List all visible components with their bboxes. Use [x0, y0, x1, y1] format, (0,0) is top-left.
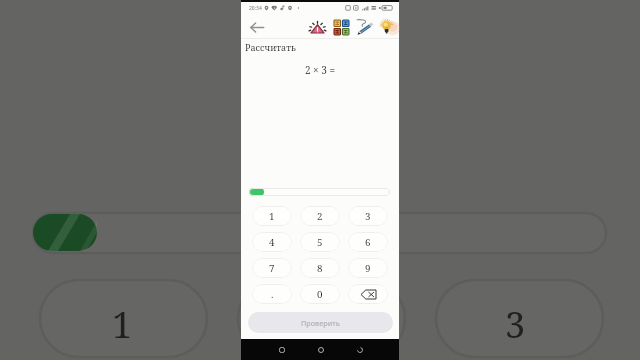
- button[interactable]: Backspace: [348, 284, 388, 304]
- button[interactable]: 8: [300, 258, 340, 278]
- button[interactable]: 7: [252, 258, 292, 278]
- staticText: 7: [269, 262, 275, 275]
- button[interactable]: Recents: [274, 342, 290, 358]
- button[interactable]: 1: [252, 206, 292, 226]
- button[interactable]: 4: [252, 232, 292, 252]
- button[interactable]: 3: [348, 206, 388, 226]
- staticText: 0: [317, 288, 323, 301]
- staticText: 9: [365, 262, 371, 275]
- staticText: 20:34: [249, 5, 262, 12]
- button[interactable]: 9: [348, 258, 388, 278]
- button[interactable]: 5: [300, 232, 340, 252]
- staticText: 4: [269, 236, 275, 249]
- button[interactable]: Warning: [307, 17, 327, 37]
- staticText: Проверить: [301, 318, 340, 328]
- staticText: 1: [269, 210, 275, 223]
- staticText: 2: [317, 210, 323, 223]
- staticText: 8: [317, 262, 323, 275]
- staticText: 3: [365, 210, 371, 223]
- staticText: 6: [365, 236, 371, 249]
- staticText: .: [271, 288, 274, 301]
- button[interactable]: .: [252, 284, 292, 304]
- button[interactable]: 6: [348, 232, 388, 252]
- staticText: 5: [317, 236, 323, 249]
- button[interactable]: Проверить: [248, 312, 393, 333]
- button[interactable]: Draw: [355, 17, 375, 37]
- staticText: Рассчитать: [245, 41, 296, 53]
- staticText: 3: [505, 300, 526, 349]
- staticText: 1: [112, 300, 133, 349]
- button[interactable]: Apps: [331, 17, 351, 37]
- button[interactable]: Hint: [377, 17, 397, 37]
- button[interactable]: Back: [352, 342, 368, 358]
- button[interactable]: 2: [300, 206, 340, 226]
- staticText: 2 × 3 =: [241, 63, 399, 77]
- button[interactable]: 0: [300, 284, 340, 304]
- button[interactable]: Back: [245, 16, 268, 39]
- button[interactable]: Home: [313, 342, 329, 358]
